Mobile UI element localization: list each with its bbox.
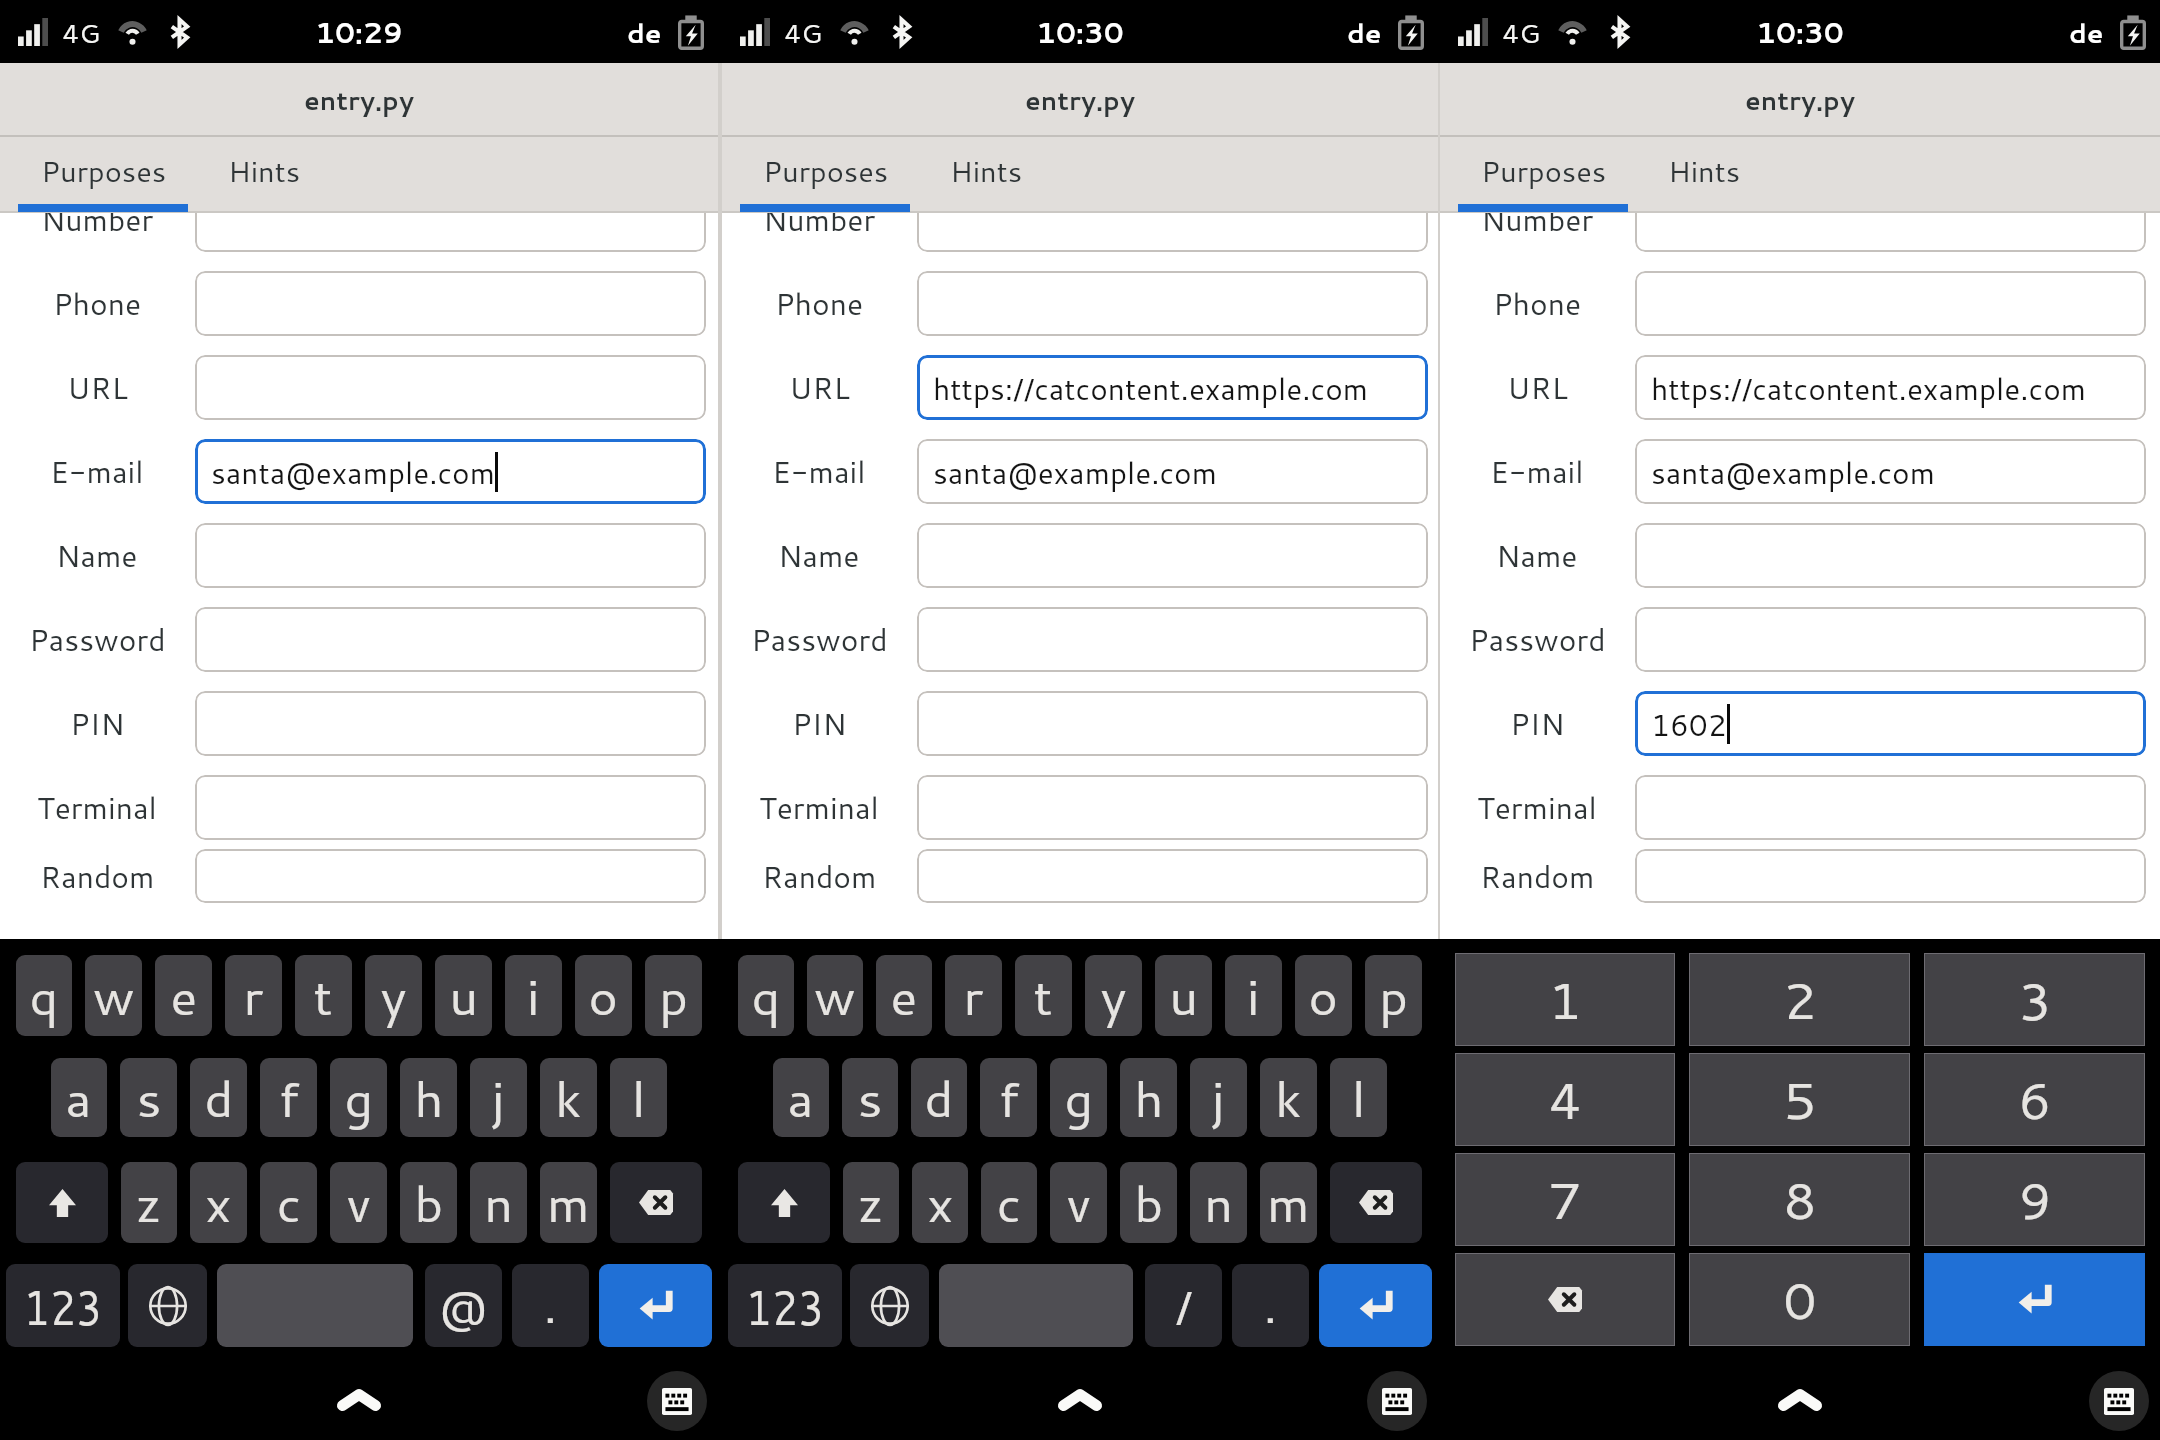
button[interactable]: URL <box>1440 345 2160 429</box>
button[interactable]: Random <box>0 849 718 903</box>
button[interactable]: v <box>1050 1162 1107 1243</box>
button[interactable]: s <box>120 1058 177 1137</box>
button[interactable]: r <box>945 955 1002 1036</box>
button[interactable]: @ <box>425 1264 502 1347</box>
button[interactable]: E-mail <box>0 429 718 513</box>
button[interactable]: Phone <box>1440 261 2160 345</box>
button[interactable]: / <box>1145 1264 1222 1347</box>
button[interactable]: URL <box>0 345 718 429</box>
button[interactable]: Purposes <box>1450 137 1638 213</box>
button[interactable]: Number <box>0 213 718 261</box>
button[interactable]: g <box>330 1058 387 1137</box>
button[interactable]: t <box>1015 955 1072 1036</box>
button[interactable]: m <box>1260 1162 1317 1243</box>
button[interactable]: z <box>843 1162 899 1243</box>
button[interactable]: Password <box>722 597 1438 681</box>
button[interactable]: Terminal <box>722 765 1438 849</box>
button[interactable]: Switch keyboard <box>647 1371 707 1431</box>
button[interactable]: b <box>400 1162 457 1243</box>
button[interactable]: z <box>121 1162 177 1243</box>
button[interactable]: Hints <box>906 137 1066 213</box>
button[interactable]: r <box>225 955 282 1036</box>
button[interactable]: u <box>435 955 492 1036</box>
button[interactable]: Random <box>722 849 1438 903</box>
button[interactable]: Hints <box>1624 137 1784 213</box>
button[interactable]: 7 <box>1455 1153 1675 1246</box>
button[interactable]: Purposes <box>10 137 198 213</box>
button[interactable]: Number <box>1440 213 2160 261</box>
button[interactable]: . <box>1232 1264 1309 1347</box>
button[interactable]: d <box>911 1058 967 1137</box>
button[interactable]: g <box>1050 1058 1107 1137</box>
button[interactable]: Name <box>1440 513 2160 597</box>
button[interactable]: b <box>1120 1162 1177 1243</box>
button[interactable]: p <box>645 955 702 1036</box>
button[interactable]: Terminal <box>0 765 718 849</box>
button[interactable]: n <box>470 1162 527 1243</box>
button[interactable]: PIN <box>722 681 1438 765</box>
button[interactable]: Number <box>722 213 1438 261</box>
button[interactable]: Hints <box>184 137 344 213</box>
button[interactable]: Back <box>1030 1353 1130 1440</box>
button[interactable]: q <box>738 955 794 1036</box>
button[interactable]: Switch language <box>850 1264 929 1347</box>
button[interactable]: k <box>540 1058 597 1137</box>
button[interactable]: PIN <box>0 681 718 765</box>
button[interactable]: q <box>16 955 72 1036</box>
button[interactable]: 6 <box>1924 1053 2145 1146</box>
button[interactable]: Switch language <box>128 1264 207 1347</box>
button[interactable]: 8 <box>1689 1153 1910 1246</box>
button[interactable]: o <box>1295 955 1352 1036</box>
button[interactable]: Space <box>217 1264 413 1347</box>
button[interactable]: Space <box>939 1264 1133 1347</box>
button[interactable]: 123 <box>728 1264 842 1347</box>
button[interactable]: w <box>807 955 863 1036</box>
button[interactable]: h <box>1120 1058 1177 1137</box>
button[interactable]: Backspace <box>1330 1162 1422 1243</box>
button[interactable]: y <box>1085 955 1142 1036</box>
button[interactable]: Shift <box>738 1162 830 1243</box>
button[interactable]: Backspace <box>1455 1253 1675 1346</box>
button[interactable]: a <box>51 1058 107 1137</box>
button[interactable]: Phone <box>0 261 718 345</box>
button[interactable]: a <box>773 1058 829 1137</box>
button[interactable]: 1 <box>1455 953 1675 1046</box>
button[interactable]: x <box>912 1162 968 1243</box>
button[interactable]: o <box>575 955 632 1036</box>
button[interactable]: c <box>260 1162 317 1243</box>
button[interactable]: t <box>295 955 352 1036</box>
button[interactable]: E-mail <box>722 429 1438 513</box>
button[interactable]: x <box>190 1162 247 1243</box>
button[interactable]: c <box>981 1162 1037 1243</box>
button[interactable]: f <box>980 1058 1037 1137</box>
button[interactable]: j <box>470 1058 527 1137</box>
button[interactable]: 9 <box>1924 1153 2145 1246</box>
button[interactable]: Terminal <box>1440 765 2160 849</box>
button[interactable]: 0 <box>1689 1253 1910 1346</box>
button[interactable]: Name <box>722 513 1438 597</box>
button[interactable]: e <box>155 955 212 1036</box>
button[interactable]: Purposes <box>732 137 920 213</box>
button[interactable]: E-mail <box>1440 429 2160 513</box>
button[interactable]: l <box>1330 1058 1387 1137</box>
button[interactable]: Name <box>0 513 718 597</box>
button[interactable]: j <box>1190 1058 1247 1137</box>
button[interactable]: Back <box>1750 1353 1850 1440</box>
button[interactable]: i <box>505 955 562 1036</box>
button[interactable]: Enter <box>1319 1264 1432 1347</box>
button[interactable]: Random <box>1440 849 2160 903</box>
button[interactable]: e <box>876 955 932 1036</box>
button[interactable]: Backspace <box>610 1162 702 1243</box>
button[interactable]: n <box>1190 1162 1247 1243</box>
button[interactable]: Password <box>1440 597 2160 681</box>
button[interactable]: 4 <box>1455 1053 1675 1146</box>
button[interactable]: Switch keyboard <box>1367 1371 1427 1431</box>
button[interactable]: h <box>400 1058 457 1137</box>
button[interactable]: u <box>1155 955 1212 1036</box>
button[interactable]: Enter <box>599 1264 712 1347</box>
button[interactable]: s <box>842 1058 898 1137</box>
button[interactable]: 123 <box>6 1264 120 1347</box>
button[interactable]: Back <box>309 1353 409 1440</box>
button[interactable]: . <box>512 1264 589 1347</box>
button[interactable]: 2 <box>1689 953 1910 1046</box>
